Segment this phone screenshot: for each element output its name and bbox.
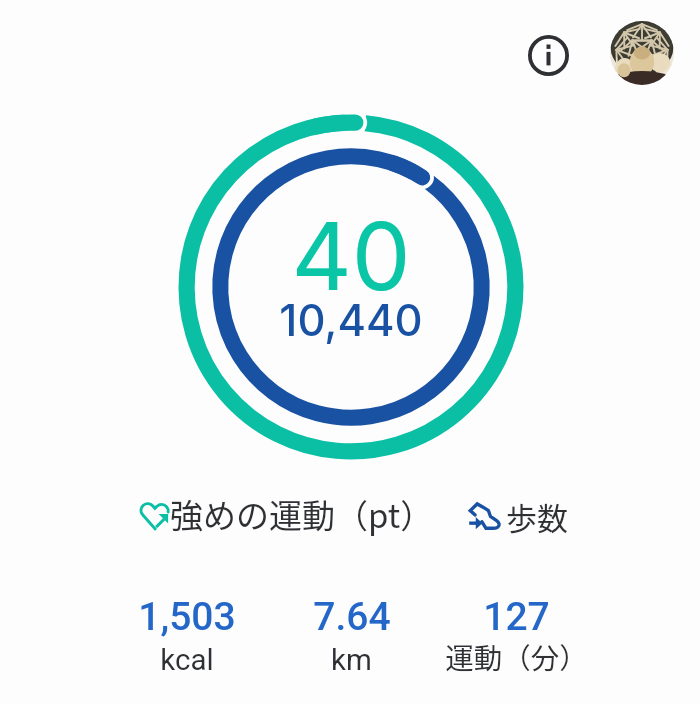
staticText: 127 <box>483 594 550 640</box>
button[interactable]: 強めの運動（pt） <box>129 483 440 551</box>
staticText: 1,503 <box>138 594 236 640</box>
staticText: 運動（分） <box>445 636 588 677</box>
staticText: km <box>331 643 372 678</box>
button[interactable]: 歩数 <box>460 486 575 551</box>
staticText: 歩数 <box>506 494 568 539</box>
staticText: 10,440 <box>279 294 423 347</box>
button[interactable]: 127 <box>434 594 599 681</box>
staticText: 強めの運動（pt） <box>170 490 434 538</box>
staticText: 7.64 <box>313 594 391 640</box>
button[interactable]: Info <box>523 30 573 80</box>
staticText: kcal <box>160 643 214 678</box>
button[interactable]: Profile <box>610 21 674 85</box>
button[interactable]: 7.64 <box>269 594 434 675</box>
staticText: 40 <box>291 200 411 313</box>
button[interactable]: 1,503 <box>104 594 269 675</box>
